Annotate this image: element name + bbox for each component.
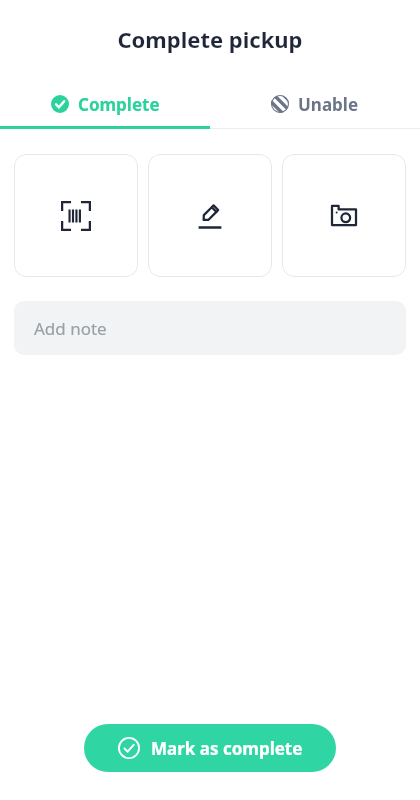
staticText: Add note: [34, 317, 107, 340]
button[interactable]: Mark as complete: [84, 724, 336, 772]
button[interactable]: Complete: [0, 82, 210, 126]
button[interactable]: Add note: [14, 301, 406, 355]
staticText: Mark as complete: [151, 737, 303, 760]
button[interactable]: Take photo: [282, 154, 406, 277]
button[interactable]: Scan barcode: [14, 154, 138, 277]
button[interactable]: Add signature: [148, 154, 272, 277]
button[interactable]: Unable: [210, 82, 420, 126]
staticText: Complete pickup: [0, 24, 420, 54]
staticText: Complete: [78, 93, 160, 116]
staticText: Unable: [298, 93, 359, 116]
